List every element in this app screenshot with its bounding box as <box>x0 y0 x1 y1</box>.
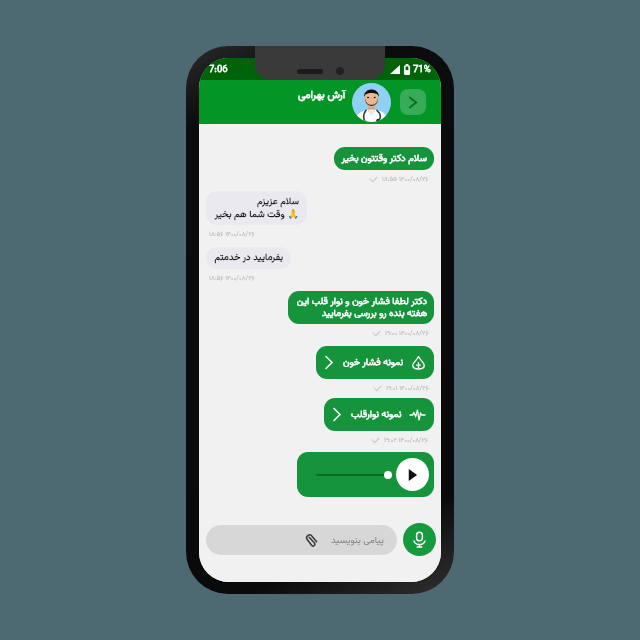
staticText: ۱۸:۵۶ ۱۴۰۰/۰۸/۲۶ <box>209 273 255 283</box>
staticText: دکتر لطفا فشار خون و نوار قلب این هفته ب… <box>295 296 427 320</box>
staticText: نمونه فشار خون <box>343 355 404 370</box>
staticText: 71% <box>413 62 431 77</box>
button[interactable]: Doctor profile <box>352 83 391 122</box>
staticText: سلام عزیزم <box>257 196 299 208</box>
staticText: وقت شما هم بخیر 🙏 <box>214 208 299 221</box>
staticText: ۱۸:۵۶ ۱۴۰۰/۰۸/۲۶ <box>209 229 255 239</box>
staticText: ۱۹:۰۰ ۱۴۰۰/۰۸/۲۶ <box>385 328 429 338</box>
staticText: ۱۸:۵۵ ۱۴۰۰/۰۸/۲۶ <box>382 174 429 184</box>
staticText: پیامی بنویسید <box>331 533 384 548</box>
button[interactable]: نمونه نوارقلب <box>324 398 434 431</box>
staticText: ۱۹:۰۲ ۱۴۰۰/۰۸/۲۶ <box>384 435 429 445</box>
button[interactable]: سلام عزیزم <box>206 191 307 225</box>
button[interactable]: Record voice message <box>403 523 436 556</box>
button[interactable]: بفرمایید در خدمتم <box>206 247 291 269</box>
staticText: آرش بهرامی <box>298 87 346 103</box>
button[interactable]: Back <box>400 89 426 115</box>
staticText: نمونه نوارقلب <box>351 407 402 422</box>
staticText: بفرمایید در خدمتم <box>214 252 283 264</box>
button[interactable]: نمونه فشار خون <box>316 346 434 379</box>
button[interactable]: پیامی بنویسید <box>206 525 397 555</box>
button[interactable]: سلام دکتر وقتتون بخیر <box>334 147 434 170</box>
staticText: سلام دکتر وقتتون بخیر <box>341 153 427 165</box>
button[interactable]: Play voice message <box>297 452 434 497</box>
staticText: ۱۹:۰۱ ۱۴۰۰/۰۸/۲۶ <box>386 383 429 393</box>
staticText: 7:06 <box>209 62 228 77</box>
button[interactable]: دکتر لطفا فشار خون و نوار قلب این هفته ب… <box>288 291 434 324</box>
button[interactable]: Play voice message <box>396 458 429 491</box>
